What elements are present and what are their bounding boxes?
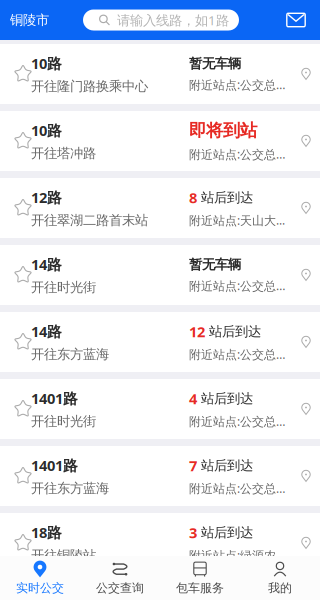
staticText: 12 [189, 322, 205, 341]
button[interactable]: 公交查询 [80, 556, 160, 600]
staticText: 我的 [268, 581, 292, 595]
button[interactable]: 包车服务 [160, 556, 240, 600]
staticText: 站后到达 [209, 323, 261, 340]
staticText: 附近站点:公交总… [189, 346, 285, 362]
staticText: 开往时光街 [31, 279, 96, 295]
staticText: 附近站点:公交总… [189, 480, 285, 496]
staticText: 开往东方蓝海 [31, 480, 109, 496]
staticText: 请输入线路，如1路 [117, 11, 229, 29]
staticText: 1401路 [31, 456, 78, 475]
staticText: 公交查询 [96, 581, 144, 595]
staticText: 即将到站 [189, 120, 257, 141]
staticText: 实时公交 [16, 581, 64, 595]
staticText: 附近站点:绿源农… [189, 547, 285, 563]
staticText: 附近站点:公交总… [189, 278, 285, 294]
button[interactable]: 1401路 [0, 446, 320, 506]
staticText: 附近站点:公交总… [189, 77, 285, 93]
button[interactable]: 14路 [0, 312, 320, 372]
staticText: 暂无车辆 [189, 256, 241, 273]
staticText: 附近站点:天山大道 [189, 212, 287, 228]
staticText: 站后到达 [201, 390, 253, 407]
staticText: 站后到达 [201, 524, 253, 541]
button[interactable]: 18路 [0, 513, 320, 573]
button[interactable]: 14路 [0, 245, 320, 305]
staticText: 站后到达 [201, 189, 253, 206]
staticText: 开往铜陵站 [31, 547, 96, 563]
staticText: 8 [189, 188, 197, 207]
staticText: 附近站点:公交总… [189, 413, 285, 429]
button[interactable]: 12路 [0, 178, 320, 238]
button[interactable]: 10路 [0, 44, 320, 104]
button[interactable]: 1401路 [0, 379, 320, 439]
staticText: 附近站点:公交总… [189, 146, 285, 162]
button[interactable]: Messages [272, 0, 320, 40]
staticText: 开往翠湖二路首末站 [31, 212, 148, 228]
button[interactable]: 我的 [240, 556, 320, 600]
staticText: 10路 [31, 121, 62, 140]
staticText: 14路 [31, 255, 62, 274]
staticText: 暂无车辆 [189, 55, 241, 72]
staticText: 开往时光街 [31, 413, 96, 429]
staticText: 开往隆门路换乘中心 [31, 78, 148, 94]
staticText: 3 [189, 523, 197, 542]
staticText: 站后到达 [201, 457, 253, 474]
staticText: 1401路 [31, 389, 78, 408]
staticText: 开往塔冲路 [31, 145, 96, 161]
staticText: 铜陵市 [10, 12, 49, 28]
button[interactable]: 实时公交 [0, 556, 80, 600]
button[interactable]: 10路 [0, 111, 320, 171]
staticText: 18路 [31, 523, 62, 542]
staticText: 12路 [31, 188, 62, 207]
staticText: 包车服务 [176, 581, 224, 595]
staticText: 10路 [31, 54, 62, 73]
button[interactable]: 请输入线路，如1路 [83, 9, 239, 30]
staticText: 开往东方蓝海 [31, 346, 109, 362]
button[interactable]: 铜陵市 [0, 0, 83, 40]
staticText: 4 [189, 389, 197, 408]
staticText: 14路 [31, 322, 62, 341]
staticText: 7 [189, 456, 197, 475]
